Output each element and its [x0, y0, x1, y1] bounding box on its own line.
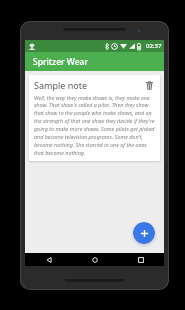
- button[interactable]: Sample note: [29, 75, 160, 161]
- button[interactable]: Home: [72, 253, 118, 266]
- staticText: 02:37: [146, 42, 162, 50]
- button[interactable]: Spritzer Wear: [25, 52, 164, 71]
- staticText: Sample note: [34, 79, 143, 91]
- button[interactable]: Back: [25, 253, 72, 266]
- button[interactable]: Recent apps: [118, 253, 164, 266]
- staticText: Spritzer Wear: [33, 56, 88, 68]
- button[interactable]: Add note: [133, 222, 155, 244]
- staticText: Well, the way they make shows is, they m…: [34, 94, 155, 157]
- button[interactable]: Delete note: [143, 79, 155, 91]
